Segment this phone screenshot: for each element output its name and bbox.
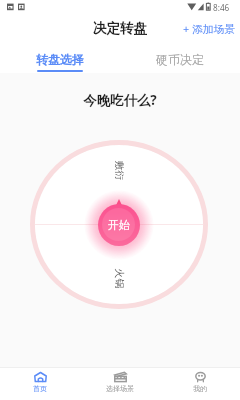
button[interactable]: 开始 xyxy=(98,204,140,246)
staticText: 我的 xyxy=(193,384,207,393)
staticText: 转盘选择 xyxy=(36,52,84,67)
button[interactable]: 硬币决定 xyxy=(120,43,240,73)
button[interactable]: 选择场景 xyxy=(80,368,160,400)
staticText: 首页 xyxy=(33,384,47,393)
staticText: 今晚吃什么? xyxy=(0,91,240,109)
button[interactable]: + 添加场景 xyxy=(177,16,240,41)
button[interactable]: 转盘选择 xyxy=(0,43,120,73)
staticText: 火锅 xyxy=(112,268,125,288)
staticText: 8:46 xyxy=(213,2,230,13)
staticText: 决定转盘 xyxy=(93,20,147,37)
staticText: 硬币决定 xyxy=(156,52,204,67)
staticText: 开始 xyxy=(108,218,130,232)
staticText: 敷衍 xyxy=(112,160,125,180)
staticText: 选择场景 xyxy=(106,384,134,393)
button[interactable]: 首页 xyxy=(0,368,80,400)
button[interactable]: 我的 xyxy=(160,368,240,400)
staticText: + 添加场景 xyxy=(183,21,236,36)
